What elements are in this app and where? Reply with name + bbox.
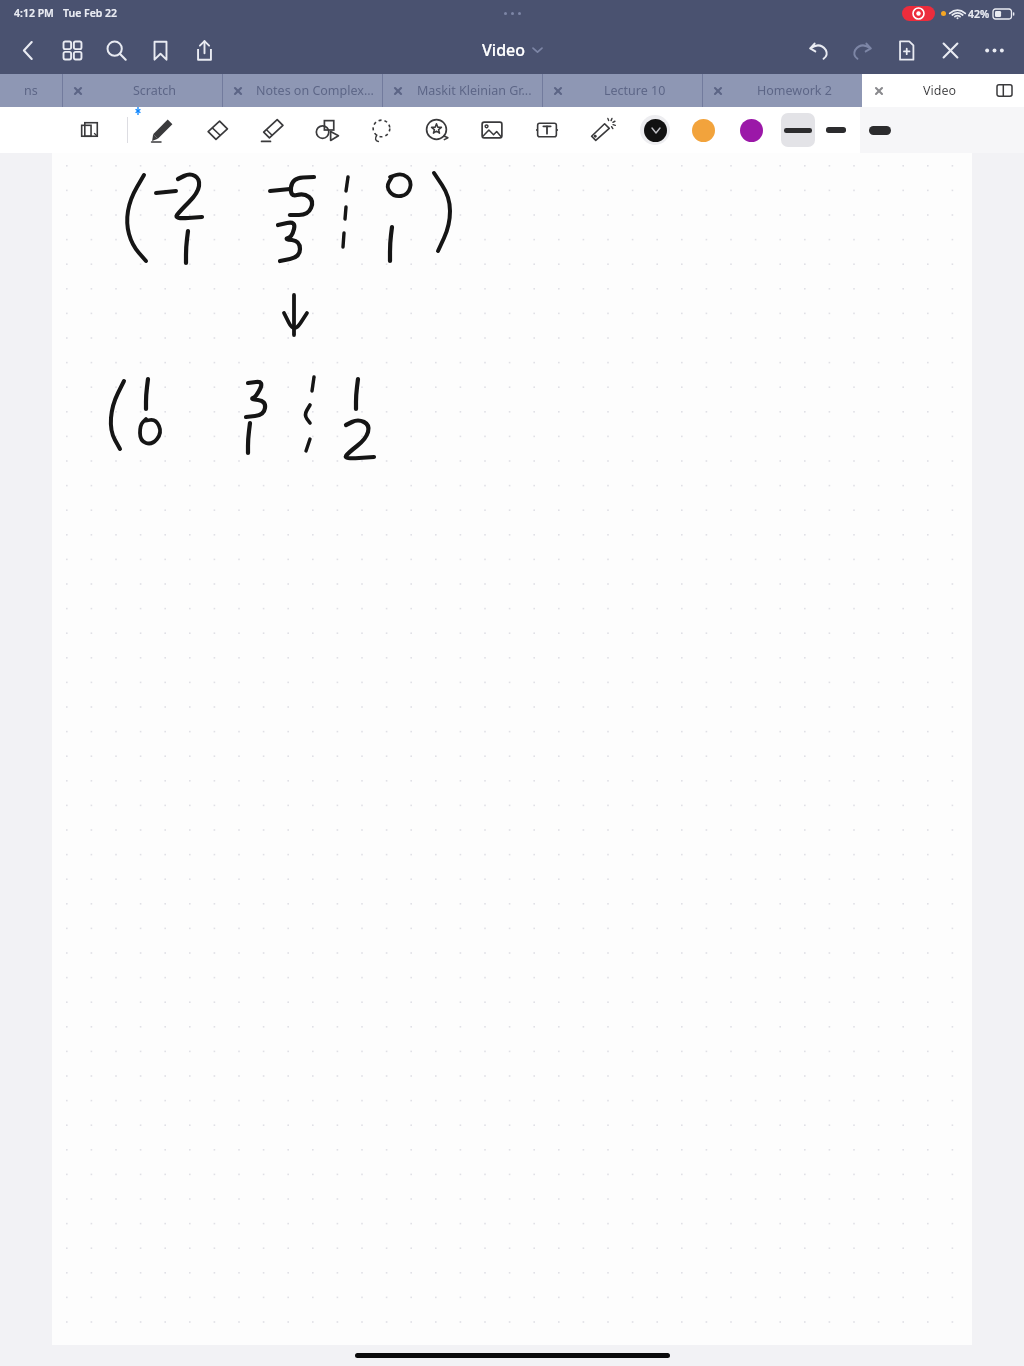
staticText: Tue Feb 22 — [63, 6, 118, 20]
staticText: Homework 2 — [757, 82, 832, 99]
button[interactable]: Close Maskit Kleinian Gr... — [383, 74, 413, 107]
button[interactable]: Back — [6, 28, 50, 72]
staticText: 4:12 PM — [14, 6, 54, 20]
staticText: Scratch — [133, 82, 177, 99]
staticText: ns — [24, 82, 38, 99]
button[interactable]: Laser — [574, 107, 629, 153]
button[interactable]: Split view — [984, 74, 1024, 107]
button[interactable]: Stroke width — [819, 113, 853, 147]
button[interactable]: Close Homework 2 — [703, 74, 733, 107]
button[interactable]: Page options — [62, 107, 117, 153]
button[interactable]: Sticker — [409, 107, 464, 153]
button[interactable]: Pen — [134, 107, 189, 153]
staticText: 42% — [968, 7, 990, 21]
button[interactable]: Library — [50, 28, 94, 72]
staticText: Video — [923, 82, 957, 99]
button[interactable]: Close Homework 2 — [702, 74, 862, 107]
button[interactable]: Close Scratch — [63, 74, 93, 107]
button[interactable]: Undo — [796, 28, 840, 72]
staticText: Notes on Complex... — [256, 82, 374, 99]
button[interactable]: Image — [464, 107, 519, 153]
button[interactable]: Shapes — [299, 107, 354, 153]
button[interactable]: Close Lecture 10 — [542, 74, 702, 107]
button[interactable]: More — [972, 28, 1016, 72]
button[interactable]: Close Video — [862, 74, 896, 107]
button[interactable]: Close Lecture 10 — [543, 74, 573, 107]
button[interactable]: Lasso — [354, 107, 409, 153]
button[interactable]: Close Notes on Complex... — [222, 74, 382, 107]
button[interactable]: Close Maskit Kleinian Gr... — [382, 74, 542, 107]
button[interactable]: Close Notes on Complex... — [223, 74, 253, 107]
staticText: Video — [482, 39, 526, 61]
button[interactable]: Bookmark — [138, 28, 182, 72]
button[interactable]: Close Scratch — [62, 74, 222, 107]
button[interactable]: Search — [94, 28, 138, 72]
button[interactable]: New page — [884, 28, 928, 72]
button[interactable]: Stroke width — [781, 113, 815, 147]
staticText: Maskit Kleinian Gr... — [417, 82, 532, 99]
button[interactable]: Eraser — [189, 107, 244, 153]
button[interactable]: Stroke width — [863, 113, 897, 147]
button[interactable]: Text — [519, 107, 574, 153]
button[interactable]: Share — [182, 28, 226, 72]
button[interactable]: Highlighter — [244, 107, 299, 153]
staticText: Lecture 10 — [604, 82, 666, 99]
button[interactable]: Close Video — [862, 74, 1024, 107]
button[interactable]: ns — [0, 74, 62, 107]
button[interactable]: Colour — [735, 114, 767, 146]
button[interactable]: Redo — [840, 28, 884, 72]
button[interactable]: Colour — [639, 114, 671, 146]
button[interactable]: Video — [482, 39, 542, 61]
button[interactable]: Close — [928, 28, 972, 72]
button[interactable]: Colour — [687, 114, 719, 146]
